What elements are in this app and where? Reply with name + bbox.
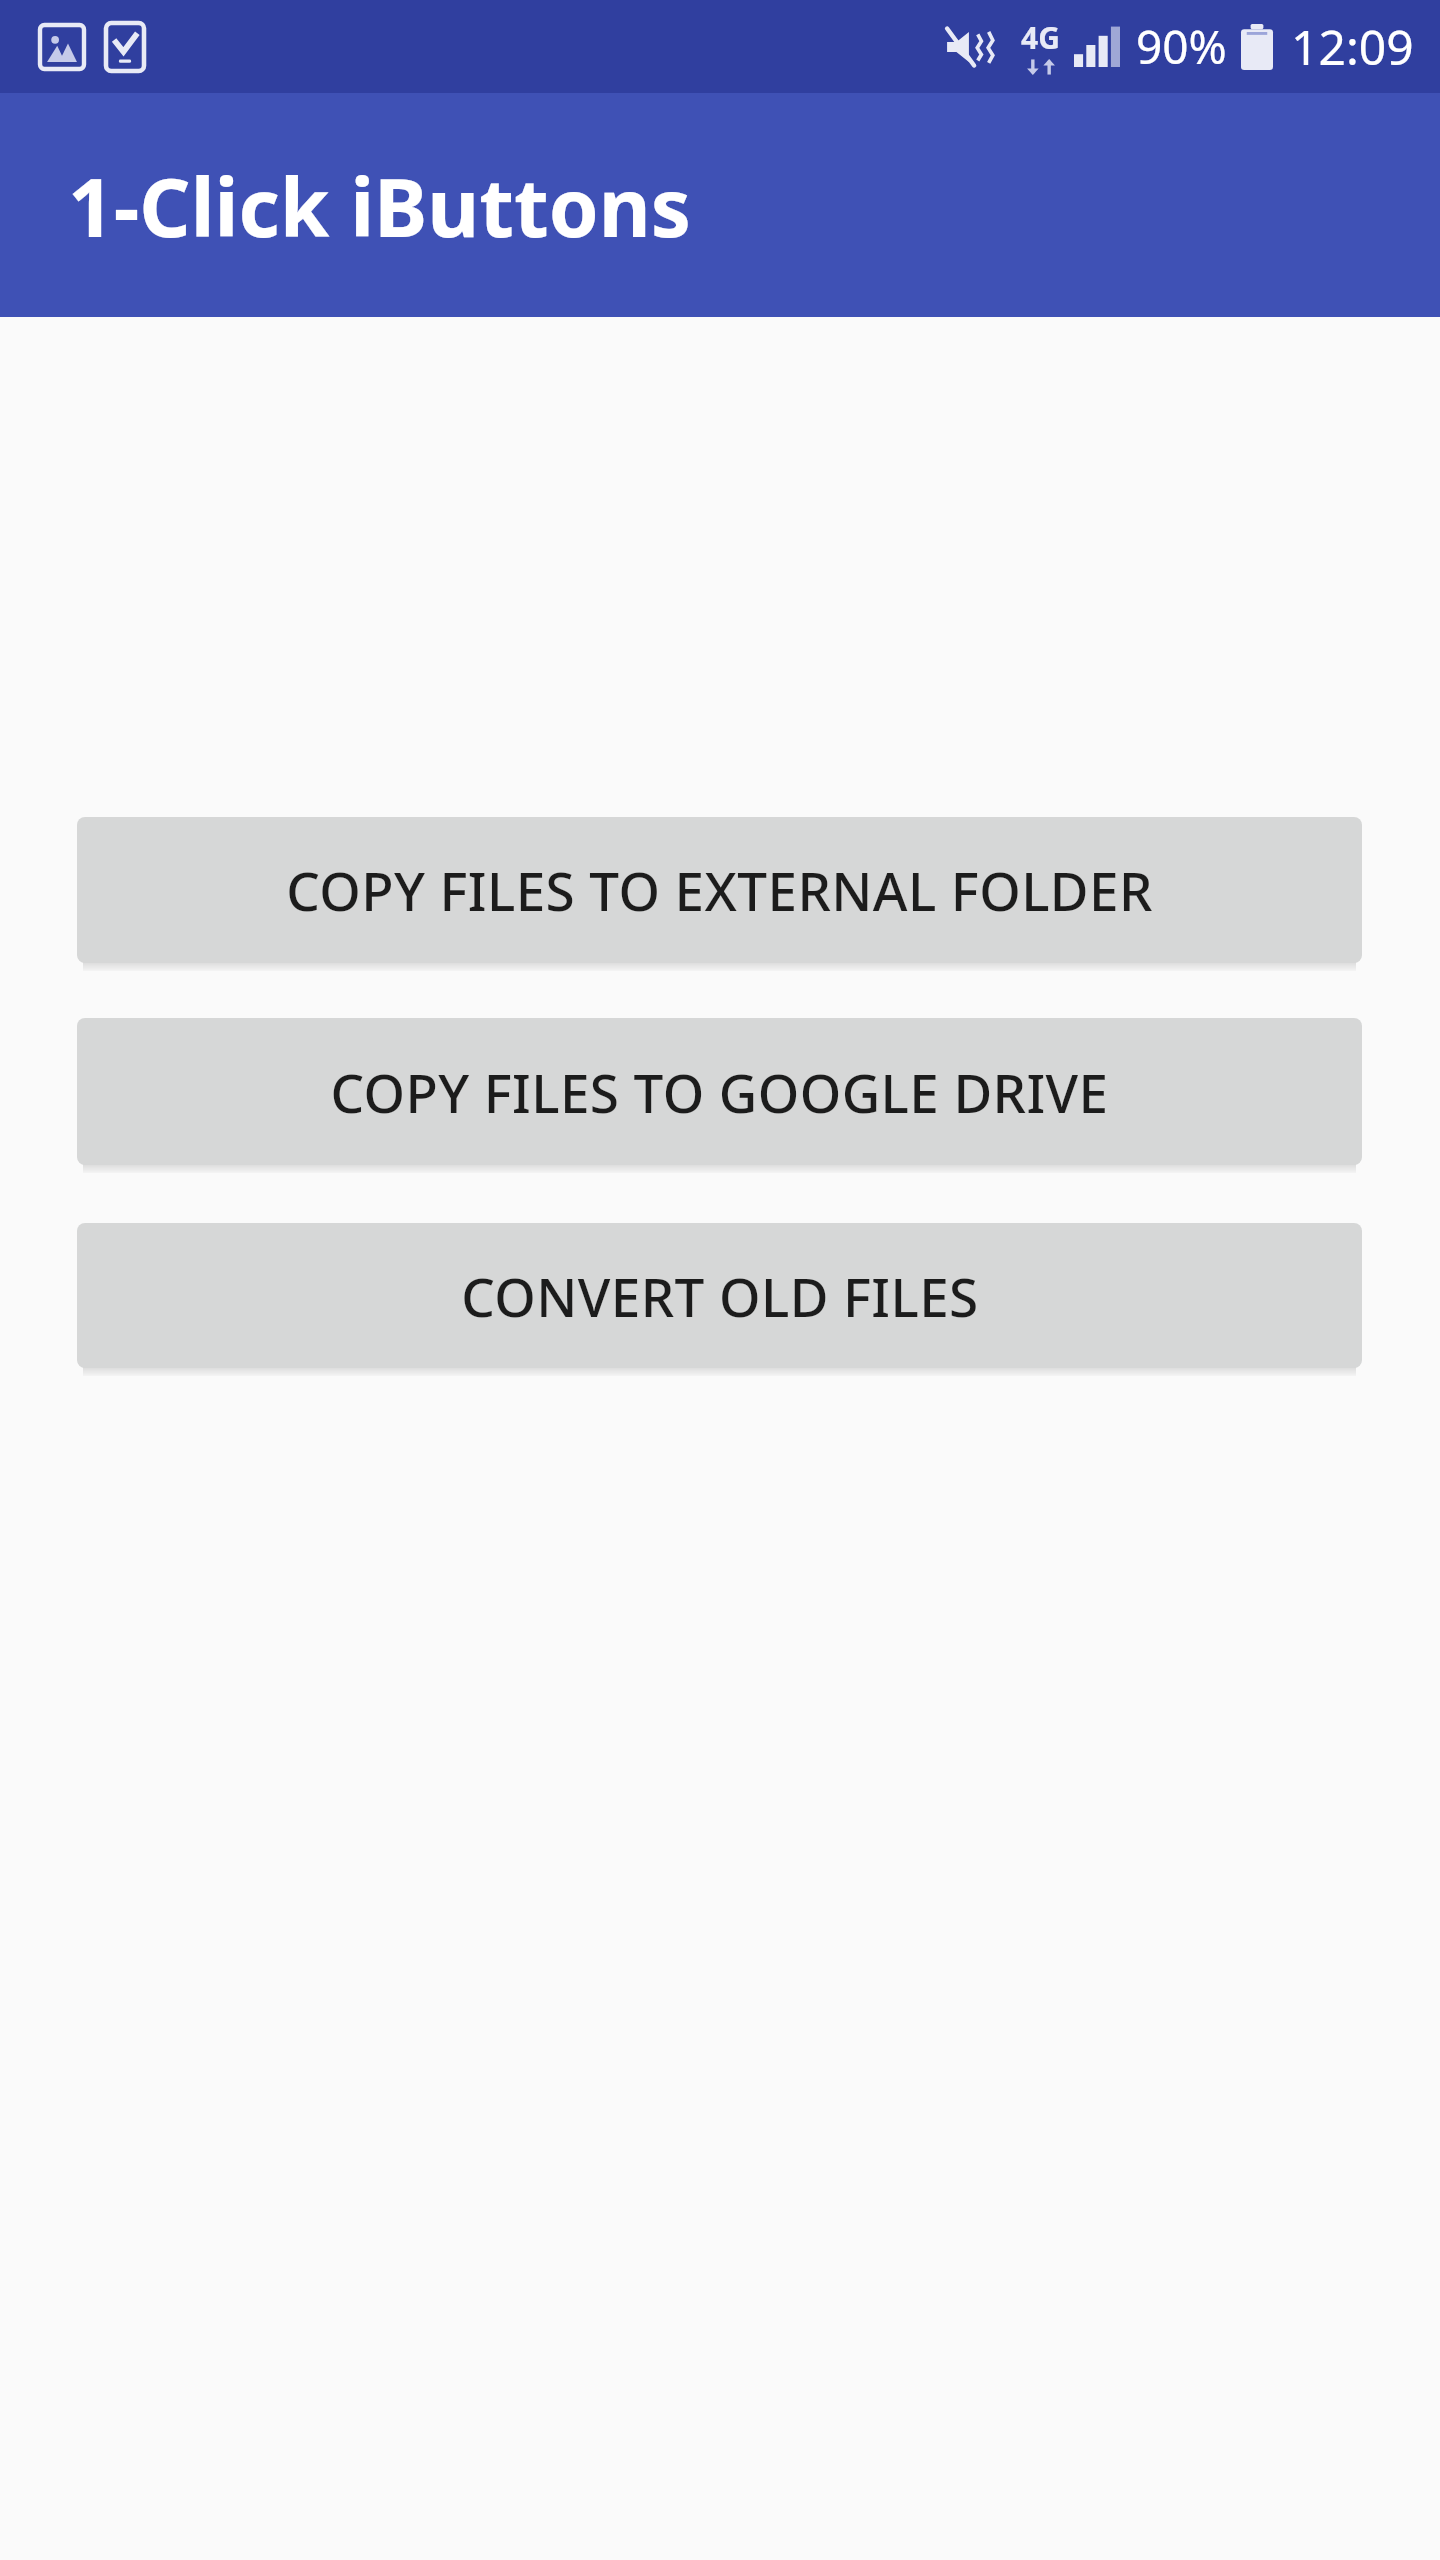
button[interactable]: COPY FILES TO EXTERNAL FOLDER: [77, 817, 1362, 963]
staticText: CONVERT OLD FILES: [461, 1260, 979, 1332]
staticText: 12:09: [1291, 14, 1414, 79]
staticText: COPY FILES TO EXTERNAL FOLDER: [286, 854, 1153, 926]
staticText: COPY FILES TO GOOGLE DRIVE: [330, 1056, 1109, 1128]
staticText: 90%: [1136, 15, 1227, 78]
button[interactable]: COPY FILES TO GOOGLE DRIVE: [77, 1018, 1362, 1165]
staticText: 4G: [1021, 17, 1060, 58]
staticText: 1-Click iButtons: [68, 151, 691, 260]
button[interactable]: CONVERT OLD FILES: [77, 1223, 1362, 1368]
